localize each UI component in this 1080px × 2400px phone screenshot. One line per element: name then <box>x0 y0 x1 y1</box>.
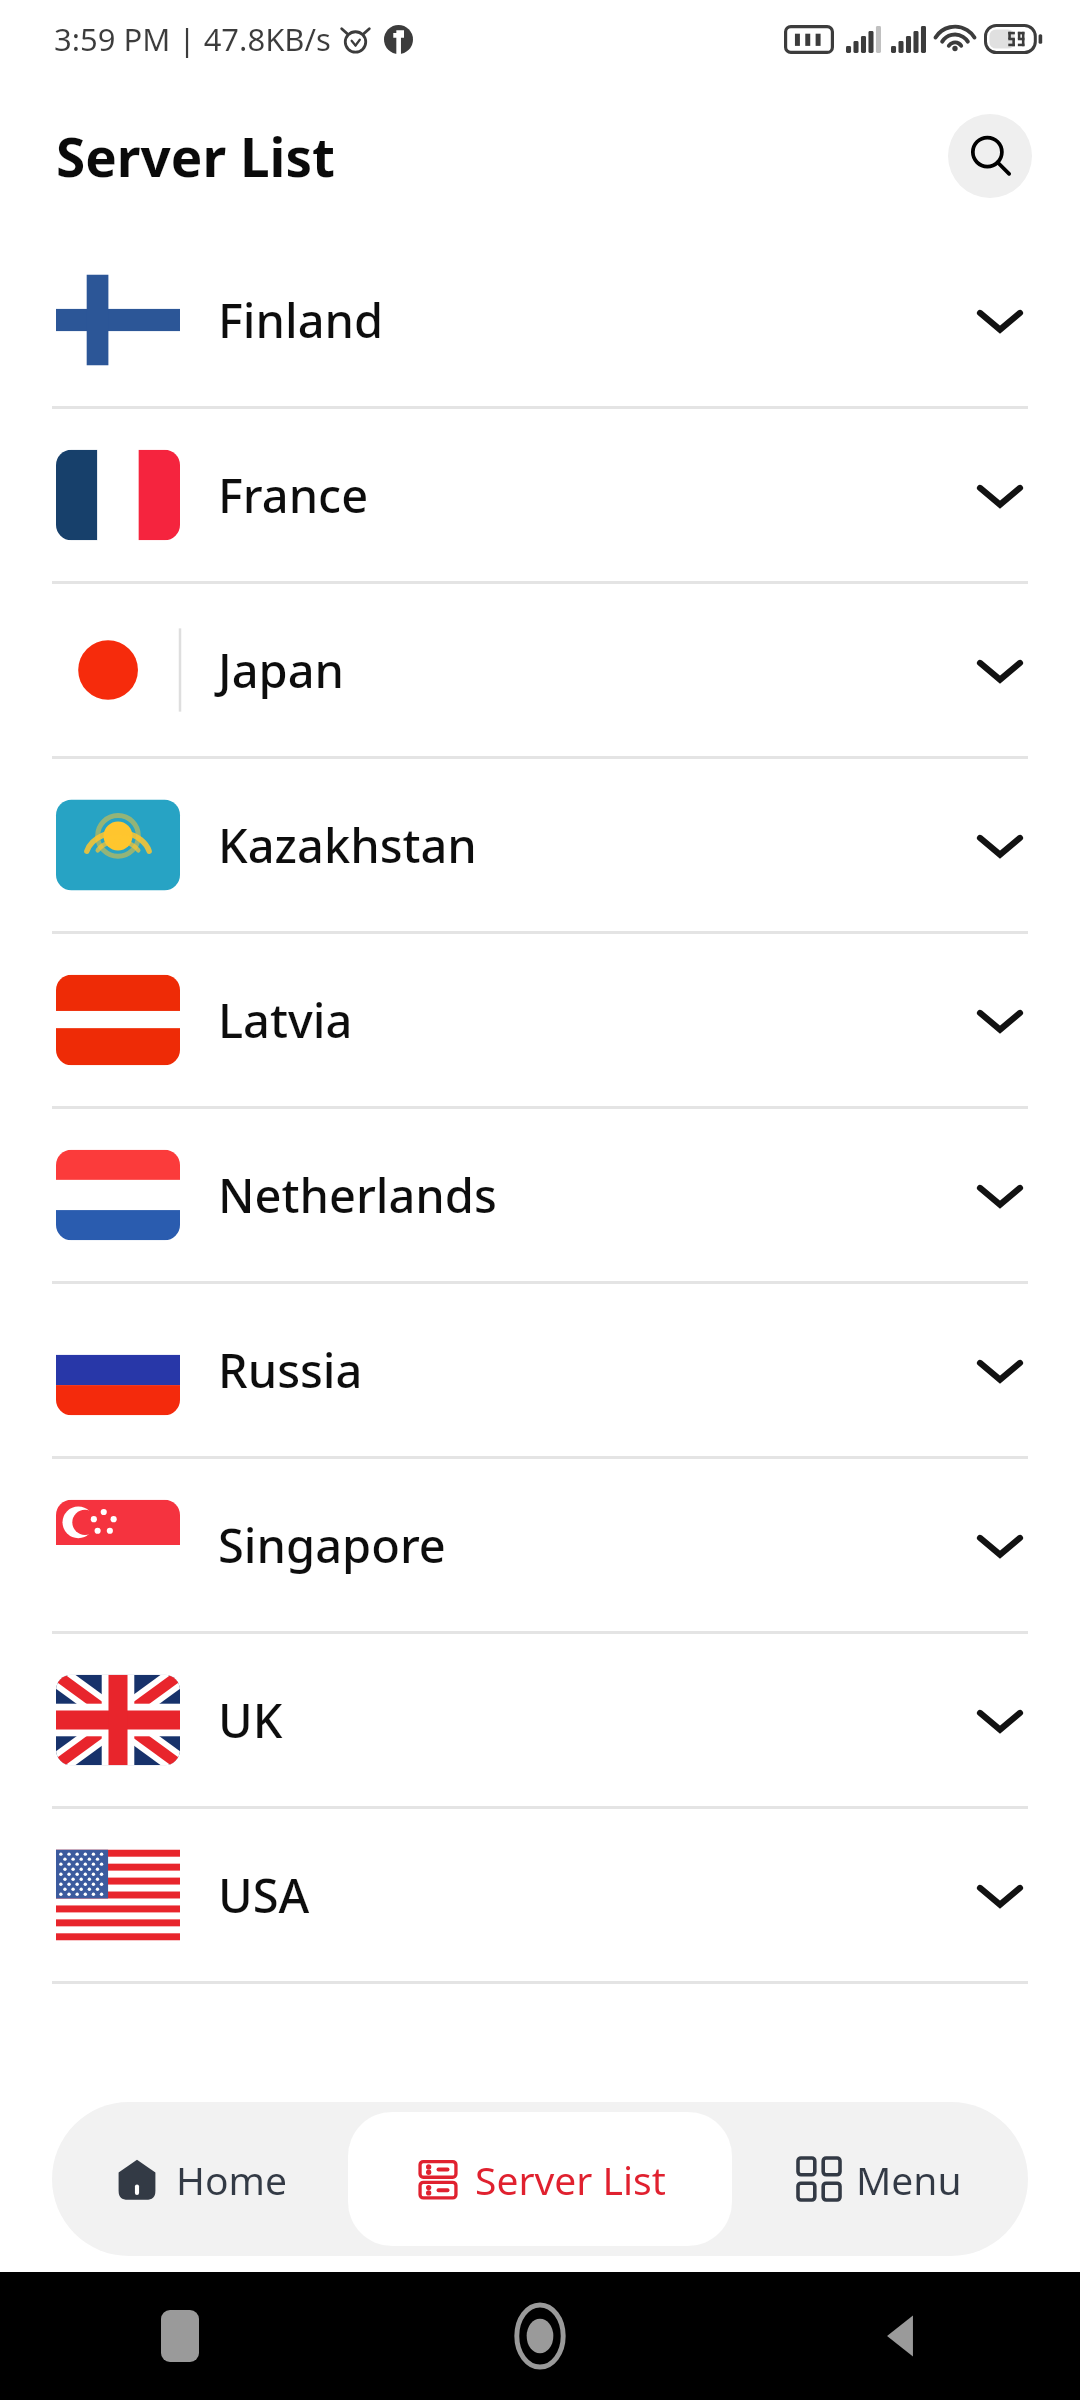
staticText: Menu <box>856 2153 962 2206</box>
button[interactable]: Recent apps <box>161 2310 199 2362</box>
staticText: Home <box>176 2153 287 2206</box>
button[interactable]: Server List <box>348 2112 732 2246</box>
staticText: Singapore <box>218 1513 446 1577</box>
button[interactable]: Russia <box>0 1284 1080 1456</box>
button[interactable]: Search <box>948 114 1032 198</box>
button[interactable]: Home <box>511 2305 569 2367</box>
staticText: France <box>218 463 369 527</box>
staticText: USA <box>218 1863 310 1927</box>
staticText: Japan <box>218 638 345 702</box>
button[interactable]: USA <box>0 1809 1080 1981</box>
staticText: Server List <box>56 120 335 192</box>
button[interactable]: Menu <box>732 2102 1028 2256</box>
button[interactable]: UK <box>0 1634 1080 1806</box>
button[interactable]: Singapore <box>0 1459 1080 1631</box>
button[interactable]: Kazakhstan <box>0 759 1080 931</box>
button[interactable]: Finland <box>0 234 1080 406</box>
button[interactable]: France <box>0 409 1080 581</box>
staticText: Latvia <box>218 988 353 1052</box>
button[interactable]: Latvia <box>0 934 1080 1106</box>
staticText: Server List <box>475 2153 666 2206</box>
staticText: Kazakhstan <box>218 813 477 877</box>
staticText: 3:59 PM | 47.8KB/s <box>54 18 331 60</box>
staticText: UK <box>218 1688 283 1752</box>
button[interactable]: Home <box>52 2102 348 2256</box>
button[interactable]: Japan <box>0 584 1080 756</box>
button[interactable]: Netherlands <box>0 1109 1080 1281</box>
staticText: Finland <box>218 288 384 352</box>
staticText: Netherlands <box>218 1163 497 1227</box>
button[interactable]: Back <box>873 2309 927 2363</box>
staticText: Russia <box>218 1338 363 1402</box>
